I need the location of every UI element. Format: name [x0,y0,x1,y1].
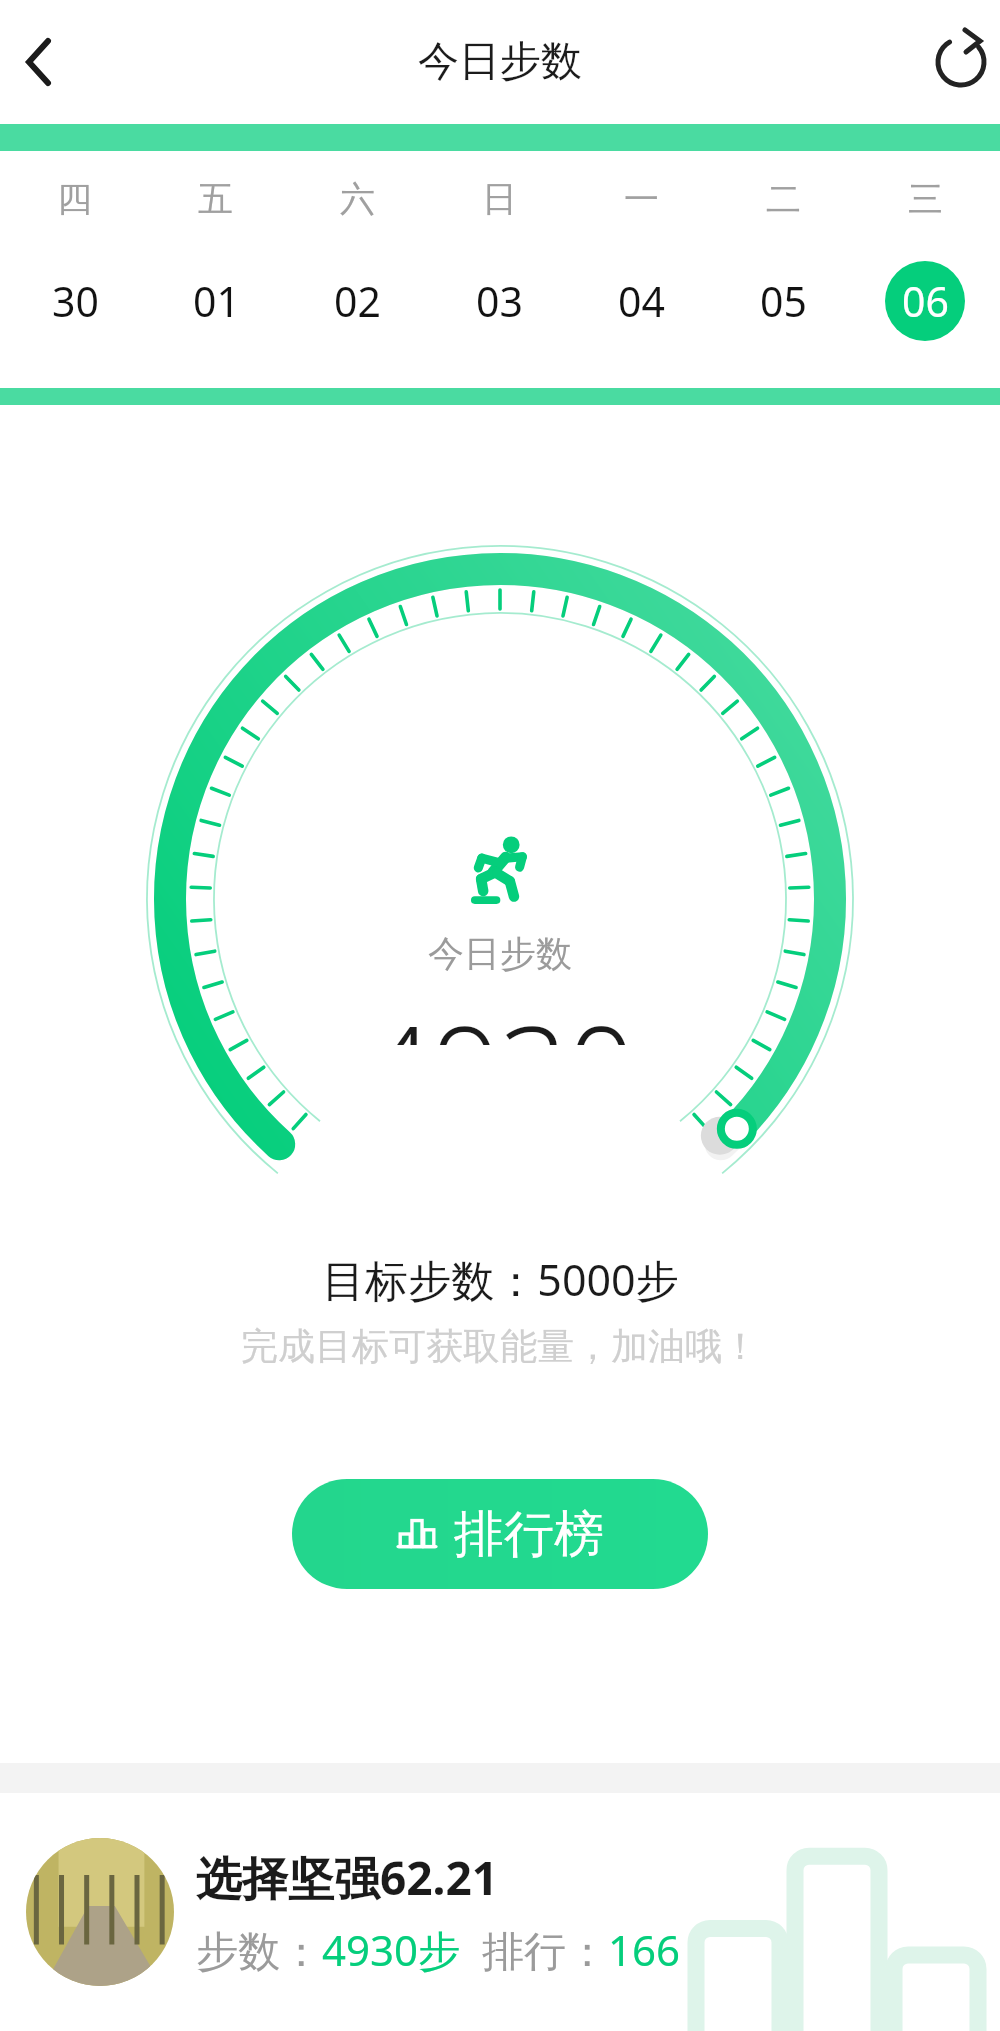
staticText: 02 [334,273,381,329]
staticText: 六 [340,177,375,221]
button[interactable]: Back [4,27,74,97]
button[interactable]: 四 [4,151,145,388]
staticText: 二 [766,177,801,221]
staticText: 一 [624,177,659,221]
staticText: 05 [760,273,807,329]
staticText: 今日步数 [418,36,582,88]
staticText: 30 [52,273,99,329]
staticText: 今日步数 [428,931,572,976]
staticText: 四 [57,177,92,221]
staticText: 04 [618,273,665,329]
button[interactable]: Share [924,25,998,99]
staticText: 日 [482,177,517,221]
button[interactable]: 六 [286,151,428,388]
staticText: 选择坚强62.21 [196,1846,499,1909]
button[interactable]: 五 [145,151,286,388]
staticText: 排行榜 [454,1503,604,1566]
button[interactable]: 日 [428,151,570,388]
staticText: 4930 [365,986,635,1045]
staticText: 01 [193,273,240,329]
staticText: 五 [198,177,233,221]
button[interactable]: 二 [712,151,854,388]
staticText: 03 [476,273,523,329]
button[interactable]: 三 [854,151,996,388]
button[interactable]: 选择坚强62.21 [0,1793,1000,2031]
staticText: 06 [902,273,949,329]
button[interactable]: 排行榜 [292,1479,708,1589]
staticText: 目标步数：5000步 [322,1250,679,1309]
staticText: 步数：4930步 排行：166 [196,1921,681,1978]
staticText: 完成目标可获取能量，加油哦！ [241,1323,759,1370]
staticText: 三 [908,177,943,221]
button[interactable]: 一 [570,151,712,388]
